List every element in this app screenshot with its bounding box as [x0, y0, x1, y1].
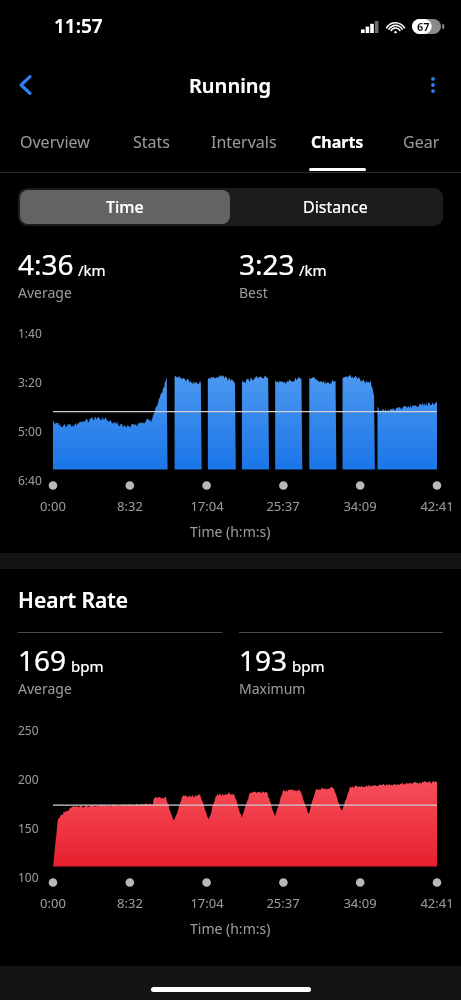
staticText: 25:37 [258, 497, 308, 515]
staticText: 11:57 [54, 13, 103, 39]
staticText: 1:40 [18, 325, 42, 341]
staticText: Overview [20, 131, 90, 153]
button[interactable]: Charts [294, 114, 381, 172]
staticText: Intervals [211, 131, 277, 153]
staticText: Best [239, 283, 268, 302]
staticText: 0:00 [28, 894, 78, 912]
staticText: 34:09 [335, 894, 385, 912]
staticText: 169 [18, 641, 67, 679]
staticText: Average [18, 679, 72, 698]
button[interactable]: Time [20, 190, 230, 224]
staticText: 0:00 [28, 497, 78, 515]
button[interactable]: Distance [230, 190, 441, 224]
staticText: Charts [311, 131, 364, 153]
button[interactable]: Intervals [193, 114, 294, 172]
staticText: 17:04 [182, 894, 232, 912]
staticText: 150 [18, 820, 39, 836]
staticText: 5:00 [18, 423, 42, 439]
staticText: 100 [18, 869, 39, 885]
staticText: Heart Rate [18, 586, 129, 615]
staticText: 4:36 [18, 245, 74, 283]
button[interactable]: Back [4, 63, 48, 107]
staticText: 34:09 [335, 497, 385, 515]
staticText: Average [18, 283, 72, 302]
staticText: 3:20 [18, 374, 42, 390]
button[interactable]: Stats [110, 114, 193, 172]
staticText: 3:23 [239, 245, 295, 283]
staticText: Maximum [239, 679, 306, 698]
staticText: 193 [239, 641, 288, 679]
staticText: Running [189, 72, 272, 99]
staticText: bpm [292, 656, 325, 676]
button[interactable]: More options [411, 63, 455, 107]
staticText: 42:41 [412, 497, 461, 515]
staticText: bpm [71, 656, 104, 676]
staticText: 67 [417, 19, 430, 34]
staticText: 17:04 [182, 497, 232, 515]
staticText: 6:40 [18, 472, 42, 488]
staticText: Time [106, 196, 144, 218]
staticText: Stats [133, 131, 170, 153]
staticText: 200 [18, 771, 39, 787]
staticText: 8:32 [105, 894, 155, 912]
staticText: Distance [303, 196, 368, 218]
staticText: Gear [403, 131, 440, 153]
button[interactable]: Gear [381, 114, 461, 172]
staticText: 42:41 [412, 894, 461, 912]
staticText: /km [299, 260, 327, 280]
staticText: 250 [18, 722, 39, 738]
staticText: 8:32 [105, 497, 155, 515]
staticText: 25:37 [258, 894, 308, 912]
staticText: /km [78, 260, 106, 280]
staticText: Time (h:m:s) [190, 522, 271, 541]
button[interactable]: Overview [0, 114, 110, 172]
staticText: Time (h:m:s) [190, 919, 271, 938]
